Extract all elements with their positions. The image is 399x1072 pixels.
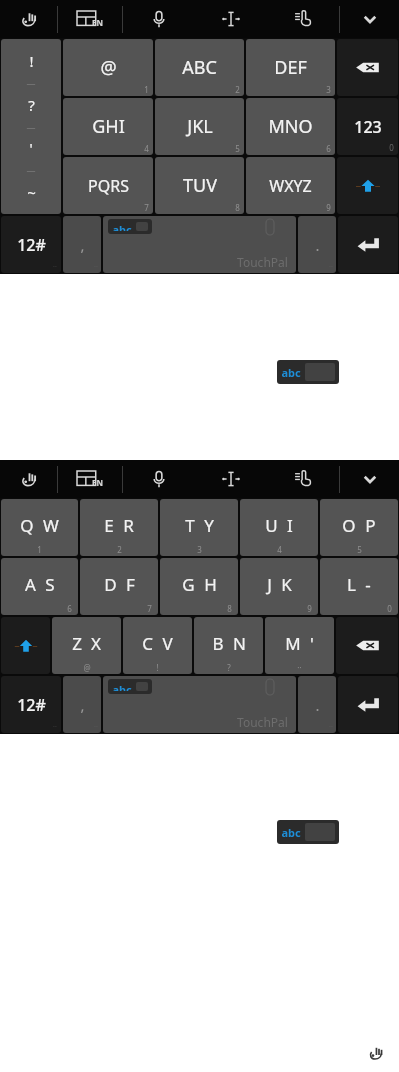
- button[interactable]: MNO: [246, 98, 335, 155]
- staticText: 2: [235, 84, 240, 95]
- button[interactable]: GHI: [63, 98, 153, 155]
- button[interactable]: Backspace: [337, 39, 398, 96]
- button[interactable]: Voice input: [123, 0, 195, 38]
- staticText: G: [182, 573, 195, 596]
- button[interactable]: Enter: [338, 216, 398, 273]
- button[interactable]: abc layout: [277, 820, 339, 844]
- staticText: 0: [389, 142, 394, 153]
- staticText: C: [142, 632, 153, 655]
- staticText: 5: [357, 544, 362, 555]
- button[interactable]: abc layout: [108, 679, 152, 694]
- staticText: ,: [80, 235, 85, 255]
- staticText: Z: [72, 632, 82, 655]
- staticText: E: [104, 514, 114, 537]
- staticText: H: [204, 573, 217, 596]
- button[interactable]: .: [298, 216, 336, 273]
- button[interactable]: Keyboard layout EN: [58, 460, 122, 498]
- staticText: T: [185, 514, 195, 537]
- button[interactable]: Handwriting: [363, 1040, 389, 1066]
- button[interactable]: abc layout: [108, 219, 152, 234]
- button[interactable]: TUV: [155, 157, 244, 214]
- staticText: abc: [112, 682, 132, 691]
- button[interactable]: DEF: [246, 39, 335, 96]
- staticText: S: [45, 573, 55, 596]
- staticText: ··: [297, 662, 302, 673]
- button[interactable]: Hide keyboard: [340, 0, 399, 38]
- button[interactable]: Gestures: [267, 0, 339, 38]
- button[interactable]: C: [123, 617, 192, 674]
- button[interactable]: Handwriting: [0, 0, 57, 38]
- button[interactable]: Symbols 12#: [1, 216, 61, 273]
- button[interactable]: Enter: [338, 676, 398, 733]
- staticText: —: [26, 121, 36, 133]
- button[interactable]: Z: [52, 617, 121, 674]
- staticText: -: [365, 573, 371, 596]
- button[interactable]: U: [240, 499, 318, 556]
- button[interactable]: Voice input: [123, 460, 195, 498]
- staticText: EN: [92, 17, 103, 28]
- staticText: Y: [204, 514, 214, 537]
- button[interactable]: Move cursor: [195, 460, 267, 498]
- staticText: U: [265, 514, 278, 537]
- staticText: PQRS: [88, 175, 129, 197]
- staticText: TouchPal: [237, 254, 288, 270]
- button[interactable]: L: [320, 558, 398, 615]
- button[interactable]: Keyboard layout EN: [58, 0, 122, 38]
- staticText: 7: [147, 603, 152, 614]
- staticText: 3: [326, 84, 331, 95]
- button[interactable]: E: [80, 499, 158, 556]
- button[interactable]: Numbers 123: [337, 98, 398, 155]
- button[interactable]: Backspace: [336, 617, 398, 674]
- button[interactable]: .: [298, 676, 336, 733]
- button[interactable]: O: [320, 499, 398, 556]
- button[interactable]: Hide keyboard: [340, 460, 399, 498]
- button[interactable]: D: [80, 558, 158, 615]
- button[interactable]: Shift: [1, 617, 50, 674]
- button[interactable]: T: [160, 499, 238, 556]
- staticText: A: [25, 573, 36, 596]
- staticText: 7: [144, 202, 149, 213]
- staticText: !: [29, 51, 34, 71]
- button[interactable]: G: [160, 558, 238, 615]
- staticText: ABC: [182, 55, 217, 80]
- staticText: @: [83, 662, 91, 673]
- staticText: JKL: [187, 114, 213, 139]
- button[interactable]: abc layout: [277, 360, 339, 384]
- staticText: 123: [354, 116, 382, 138]
- button[interactable]: ABC: [155, 39, 244, 96]
- staticText: 1: [37, 544, 42, 555]
- button[interactable]: J: [240, 558, 318, 615]
- button[interactable]: A: [1, 558, 78, 615]
- staticText: 12#: [17, 234, 46, 256]
- staticText: 0: [387, 603, 392, 614]
- button[interactable]: JKL: [155, 98, 244, 155]
- staticText: V: [162, 632, 173, 655]
- button[interactable]: Symbols 12#: [1, 676, 61, 733]
- staticText: 6: [67, 603, 72, 614]
- staticText: GHI: [92, 114, 125, 139]
- button[interactable]: Punctuation: [1, 39, 61, 214]
- button[interactable]: PQRS: [63, 157, 153, 214]
- button[interactable]: Q: [1, 499, 78, 556]
- button[interactable]: M: [265, 617, 334, 674]
- staticText: 8: [227, 603, 232, 614]
- staticText: X: [91, 632, 101, 655]
- button[interactable]: B: [194, 617, 263, 674]
- staticText: J: [267, 573, 272, 596]
- staticText: N: [233, 632, 246, 655]
- staticText: abc: [281, 825, 301, 840]
- staticText: .: [315, 695, 320, 715]
- button[interactable]: Space: [103, 676, 296, 733]
- staticText: 4: [277, 544, 282, 555]
- button[interactable]: Space: [103, 216, 296, 273]
- button[interactable]: Gestures: [267, 460, 339, 498]
- button[interactable]: Handwriting: [0, 460, 57, 498]
- button[interactable]: WXYZ: [246, 157, 335, 214]
- button[interactable]: ,: [63, 676, 101, 733]
- button[interactable]: Shift: [337, 157, 398, 214]
- button[interactable]: Move cursor: [195, 0, 267, 38]
- button[interactable]: @: [63, 39, 153, 96]
- button[interactable]: ,: [63, 216, 101, 273]
- staticText: !: [156, 662, 159, 673]
- staticText: 6: [326, 143, 331, 154]
